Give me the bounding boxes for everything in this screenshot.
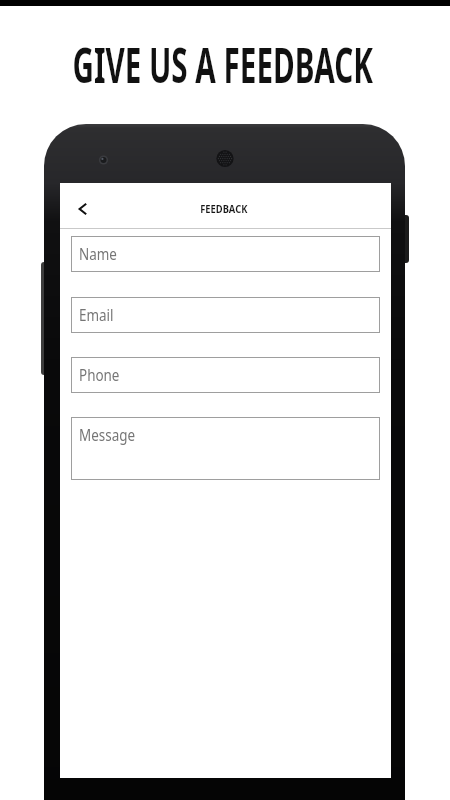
button[interactable]: Name [71, 236, 380, 272]
staticText: Name [79, 243, 118, 265]
button[interactable]: Message [71, 417, 380, 480]
button[interactable] [66, 192, 100, 226]
staticText: Phone [79, 364, 120, 386]
staticText: GIVE US A FEEDBACK [72, 32, 374, 83]
staticText: FEEDBACK [200, 201, 248, 216]
button[interactable]: Email [71, 297, 380, 333]
button[interactable]: Phone [71, 357, 380, 393]
staticText: Email [79, 304, 114, 326]
staticText: Message [79, 424, 135, 446]
